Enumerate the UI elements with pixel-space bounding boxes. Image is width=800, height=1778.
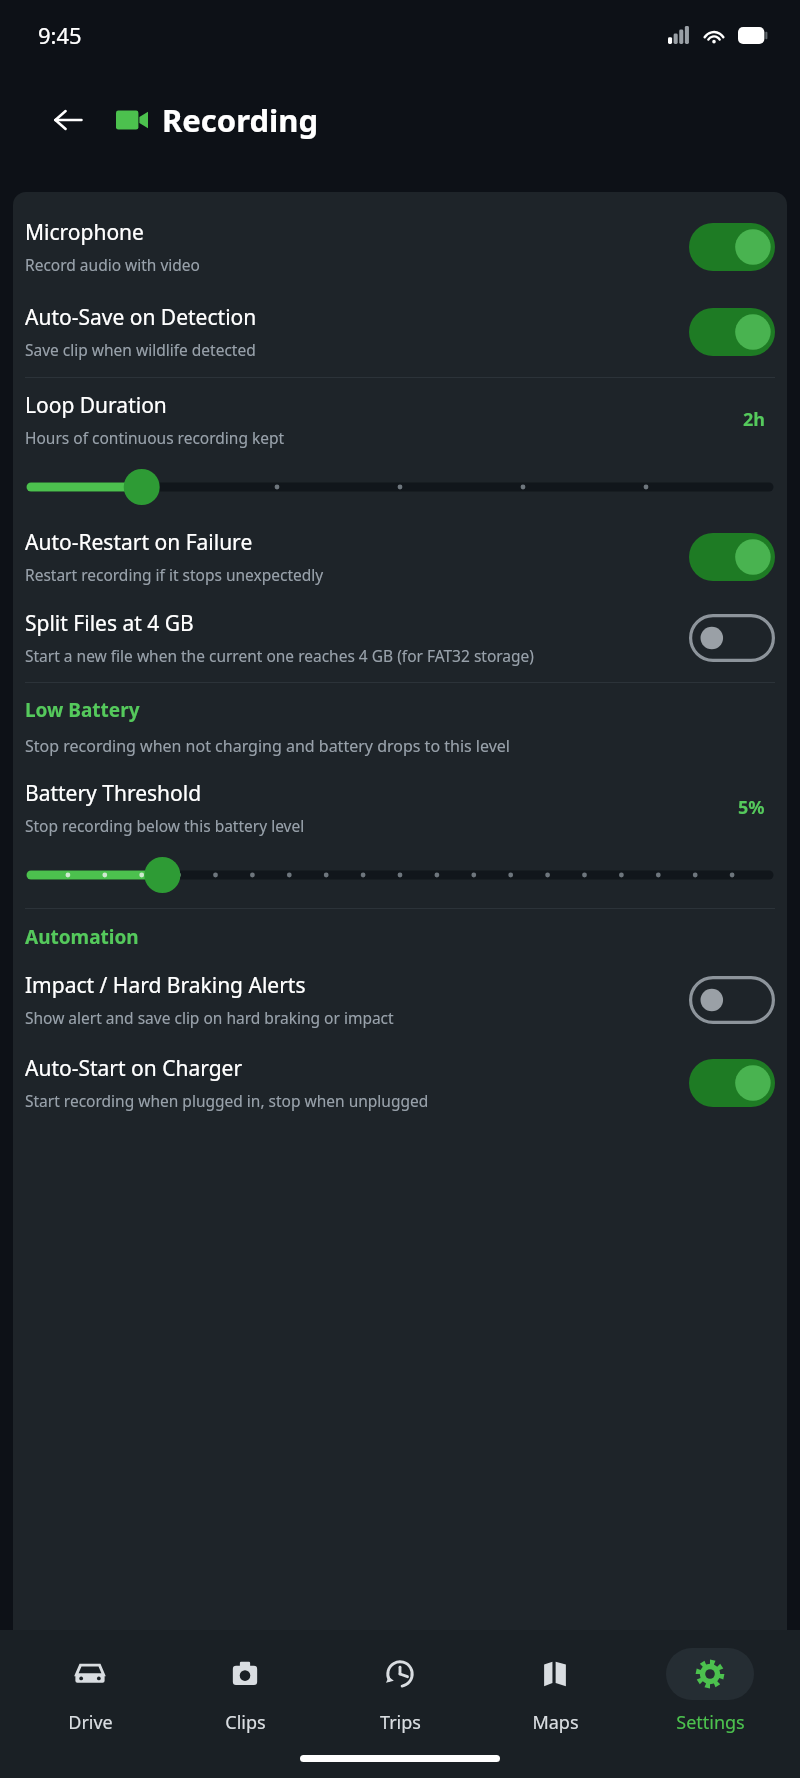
button[interactable]: Toggle on (689, 533, 775, 581)
staticText: Start recording when plugged in, stop wh… (25, 1090, 429, 1111)
staticText: Record audio with video (25, 254, 200, 275)
staticText: Settings (676, 1710, 745, 1735)
button[interactable]: Impact / Hard Braking Alerts (13, 967, 787, 1032)
button[interactable]: Loop Duration (13, 391, 787, 504)
button[interactable]: Split Files at 4 GB (13, 605, 787, 670)
staticText: Save clip when wildlife detected (25, 339, 256, 360)
staticText: 2h (743, 407, 765, 432)
staticText: 9:45 (38, 20, 82, 50)
staticText: Low Battery (25, 697, 140, 723)
staticText: Impact / Hard Braking Alerts (25, 971, 306, 1000)
button[interactable]: Toggle off (689, 614, 775, 662)
staticText: Split Files at 4 GB (25, 609, 194, 638)
button[interactable]: Clips (180, 1648, 310, 1735)
button[interactable]: Toggle on (689, 1059, 775, 1107)
button[interactable]: Auto-Save on Detection (13, 299, 787, 364)
staticText: Clips (225, 1710, 266, 1735)
staticText: Start a new file when the current one re… (25, 645, 534, 666)
staticText: Restart recording if it stops unexpected… (25, 564, 324, 585)
button[interactable]: Battery Threshold (13, 779, 787, 892)
button[interactable]: Trips (335, 1648, 465, 1735)
button[interactable]: Settings (645, 1648, 775, 1735)
button[interactable]: Toggle on (689, 223, 775, 271)
staticText: 5% (738, 795, 765, 820)
button[interactable]: Toggle off (689, 976, 775, 1024)
staticText: Drive (68, 1710, 113, 1735)
staticText: Auto-Start on Charger (25, 1054, 243, 1083)
staticText: Microphone (25, 218, 144, 247)
staticText: Battery Threshold (25, 779, 202, 808)
staticText: Loop Duration (25, 391, 167, 420)
staticText: Recording (162, 99, 319, 141)
staticText: Stop recording below this battery level (25, 815, 305, 836)
button[interactable]: Back (42, 94, 94, 146)
staticText: Show alert and save clip on hard braking… (25, 1007, 394, 1028)
button[interactable]: Maps (490, 1648, 620, 1735)
button[interactable]: Toggle on (689, 308, 775, 356)
staticText: Trips (380, 1710, 421, 1735)
staticText: Stop recording when not charging and bat… (25, 735, 510, 757)
staticText: Automation (25, 924, 139, 950)
staticText: Auto-Restart on Failure (25, 528, 253, 557)
staticText: Auto-Save on Detection (25, 303, 257, 332)
button[interactable]: Microphone (13, 214, 787, 279)
button[interactable]: Auto-Start on Charger (13, 1050, 787, 1115)
button[interactable]: Drive (25, 1648, 155, 1735)
staticText: Hours of continuous recording kept (25, 427, 285, 448)
staticText: Maps (532, 1710, 579, 1735)
button[interactable]: Auto-Restart on Failure (13, 524, 787, 589)
